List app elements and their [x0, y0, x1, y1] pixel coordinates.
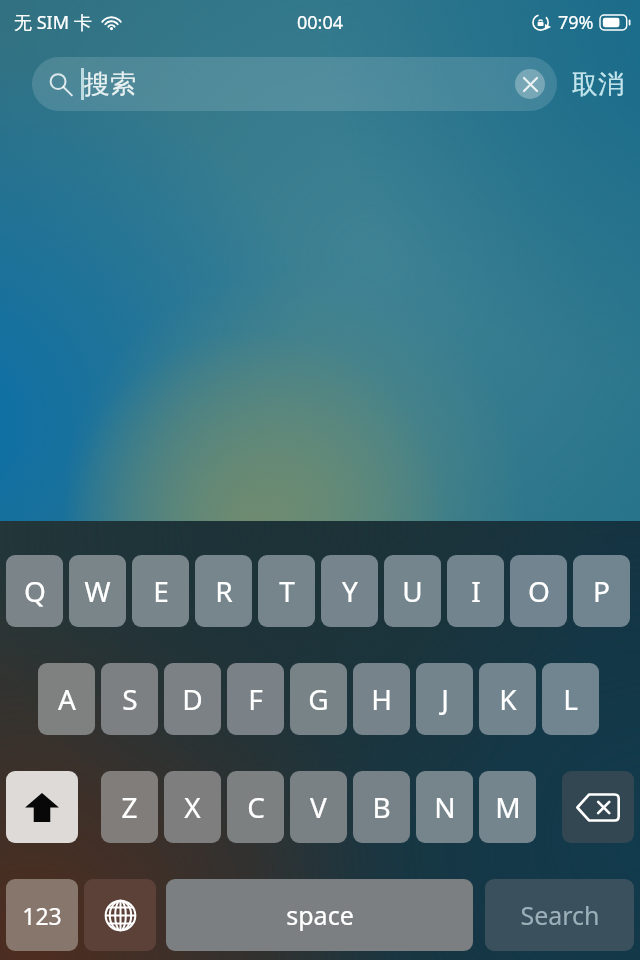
staticText: Z: [121, 788, 138, 826]
button[interactable]: T: [258, 555, 315, 627]
button[interactable]: H: [353, 663, 410, 735]
button[interactable]: K: [479, 663, 536, 735]
button[interactable]: V: [290, 771, 347, 843]
staticText: R: [215, 572, 233, 610]
staticText: space: [286, 898, 354, 932]
button[interactable]: W: [69, 555, 126, 627]
staticText: U: [402, 572, 423, 610]
staticText: Y: [342, 572, 358, 610]
button[interactable]: X: [164, 771, 221, 843]
button[interactable]: Search: [485, 879, 634, 951]
button[interactable]: 取消: [570, 60, 626, 109]
button[interactable]: 123: [6, 879, 78, 951]
staticText: 79%: [558, 10, 594, 35]
staticText: 无 SIM 卡: [14, 10, 92, 35]
staticText: 123: [22, 900, 62, 931]
button[interactable]: Switch keyboard language: [84, 879, 156, 951]
staticText: T: [279, 572, 295, 610]
staticText: Q: [24, 572, 46, 610]
button[interactable]: B: [353, 771, 410, 843]
staticText: 00:04: [297, 10, 344, 35]
staticText: L: [563, 680, 578, 718]
staticText: W: [84, 572, 111, 610]
staticText: 取消: [572, 68, 624, 101]
staticText: H: [371, 680, 392, 718]
staticText: O: [528, 572, 550, 610]
staticText: C: [247, 788, 265, 826]
staticText: Search: [520, 898, 600, 932]
button[interactable]: D: [164, 663, 221, 735]
button[interactable]: space: [166, 879, 473, 951]
button[interactable]: N: [416, 771, 473, 843]
staticText: V: [310, 788, 327, 826]
button[interactable]: J: [416, 663, 473, 735]
button[interactable]: Clear text: [515, 69, 545, 99]
button[interactable]: L: [542, 663, 599, 735]
button[interactable]: 搜索: [32, 57, 557, 111]
staticText: S: [122, 680, 138, 718]
button[interactable]: Shift: [6, 771, 78, 843]
staticText: E: [153, 572, 169, 610]
button[interactable]: R: [195, 555, 252, 627]
button[interactable]: M: [479, 771, 536, 843]
staticText: B: [372, 788, 391, 826]
button[interactable]: E: [132, 555, 189, 627]
button[interactable]: Z: [101, 771, 158, 843]
staticText: X: [184, 788, 201, 826]
button[interactable]: O: [510, 555, 567, 627]
staticText: P: [593, 572, 610, 610]
staticText: 搜索: [84, 68, 136, 101]
staticText: D: [182, 680, 203, 718]
staticText: F: [248, 680, 263, 718]
staticText: A: [58, 680, 76, 718]
button[interactable]: C: [227, 771, 284, 843]
button[interactable]: Backspace: [562, 771, 634, 843]
staticText: N: [434, 788, 456, 826]
button[interactable]: G: [290, 663, 347, 735]
button[interactable]: S: [101, 663, 158, 735]
button[interactable]: F: [227, 663, 284, 735]
button[interactable]: Y: [321, 555, 378, 627]
button[interactable]: P: [573, 555, 630, 627]
button[interactable]: Q: [6, 555, 63, 627]
button[interactable]: U: [384, 555, 441, 627]
staticText: J: [441, 680, 449, 718]
button[interactable]: A: [38, 663, 95, 735]
button[interactable]: I: [447, 555, 504, 627]
staticText: G: [308, 680, 329, 718]
staticText: I: [471, 572, 481, 610]
staticText: K: [499, 680, 517, 718]
staticText: M: [495, 788, 521, 826]
